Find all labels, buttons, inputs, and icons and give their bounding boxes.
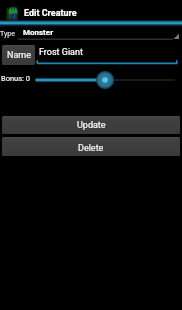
staticText: Update: [77, 120, 106, 131]
button[interactable]: Delete: [2, 137, 180, 156]
staticText: Monster: [23, 28, 54, 37]
staticText: Edit Creature: [24, 8, 77, 19]
button[interactable]: Name: [2, 45, 35, 65]
button[interactable]: Monster: [18, 26, 179, 40]
button[interactable]: App icon: [0, 0, 182, 26]
staticText: Delete: [78, 143, 104, 154]
button[interactable]: Update: [2, 116, 180, 134]
staticText: Type: [0, 30, 15, 38]
button[interactable]: Frost Giant: [35, 46, 179, 64]
button[interactable]: Bonus slider: [34, 70, 179, 90]
staticText: Name: [7, 50, 31, 61]
staticText: Bonus: 0: [1, 74, 30, 83]
other: App icon: [4, 6, 18, 20]
staticText: Frost Giant: [39, 47, 83, 58]
